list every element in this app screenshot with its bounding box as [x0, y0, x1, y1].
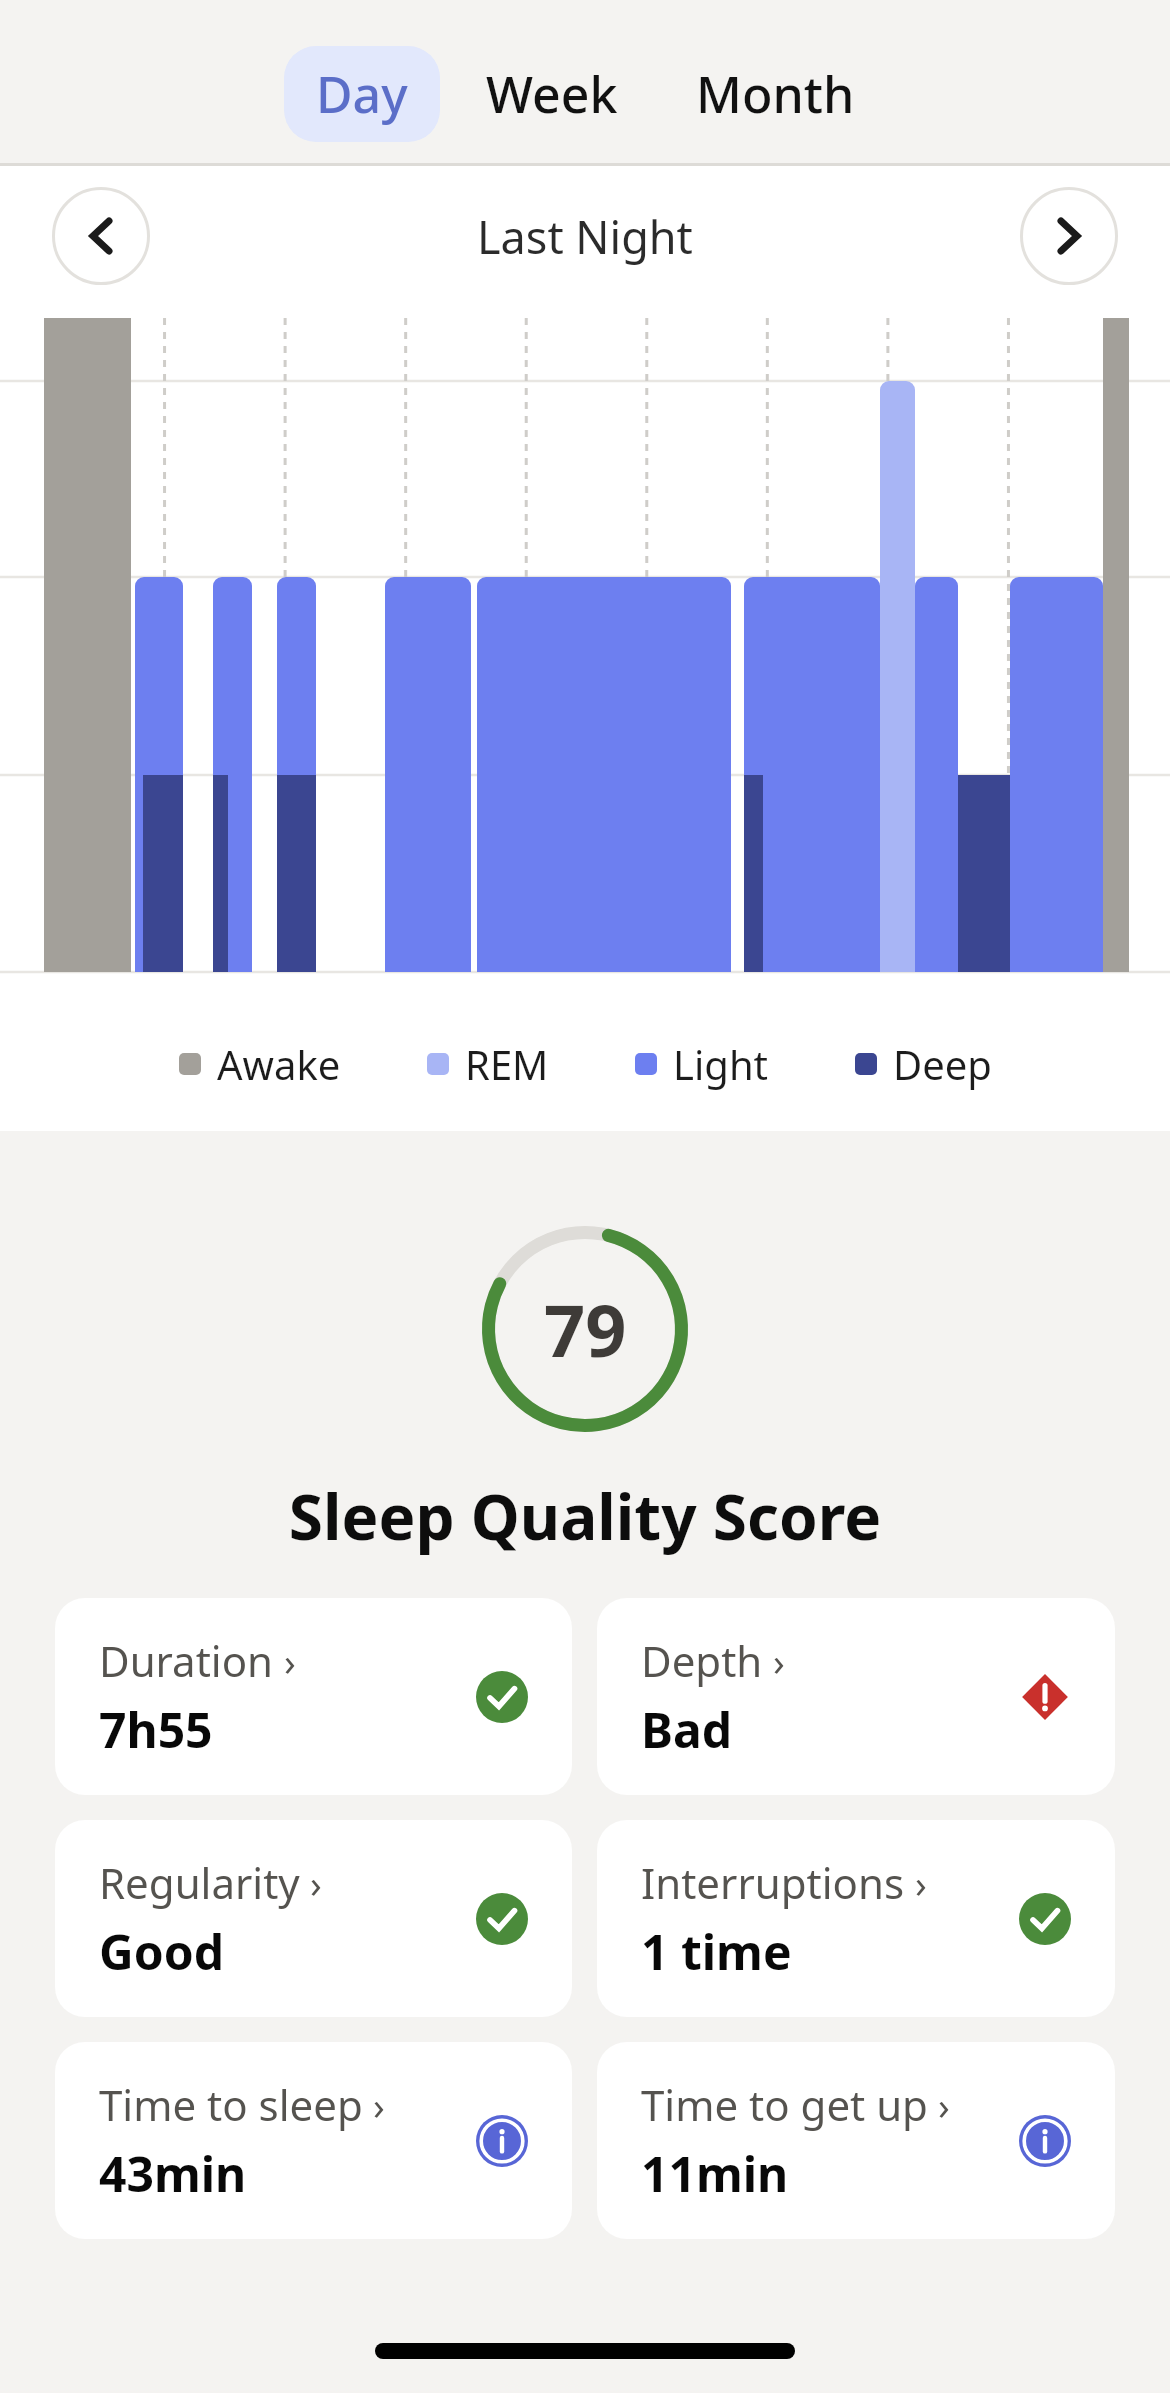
button[interactable]: Previous night — [52, 187, 150, 285]
staticText: Depth — [641, 1632, 763, 1689]
staticText: › — [284, 1635, 296, 1687]
button[interactable]: Duration — [55, 1598, 572, 1795]
staticText: Deep — [893, 1037, 992, 1091]
button[interactable]: Next night — [1020, 187, 1118, 285]
staticText: Interruptions — [641, 1854, 905, 1911]
staticText: Day — [316, 60, 408, 128]
staticText: Sleep Quality Score — [0, 1474, 1170, 1558]
staticText: Bad — [641, 1697, 733, 1762]
staticText: Light — [673, 1037, 769, 1091]
staticText: 7h55 — [99, 1697, 213, 1762]
button[interactable]: Month — [664, 46, 887, 142]
button[interactable]: Regularity — [55, 1820, 572, 2017]
staticText: › — [310, 1857, 322, 1909]
staticText: Awake — [217, 1037, 341, 1091]
staticText: REM — [465, 1037, 549, 1091]
staticText: 1 time — [641, 1919, 792, 1984]
staticText: Time to get up — [641, 2076, 928, 2133]
staticText: Week — [486, 60, 618, 128]
button[interactable]: Week — [454, 46, 650, 142]
staticText: Duration — [99, 1632, 274, 1689]
staticText: Regularity — [99, 1854, 300, 1911]
staticText: › — [373, 2079, 385, 2131]
staticText: › — [938, 2079, 950, 2131]
staticText: 11min — [641, 2141, 789, 2206]
button[interactable]: Depth — [597, 1598, 1115, 1795]
staticText: 43min — [99, 2141, 247, 2206]
button[interactable]: Time to sleep — [55, 2042, 572, 2239]
button[interactable]: Day — [284, 46, 440, 142]
staticText: Good — [99, 1919, 225, 1984]
button[interactable]: Time to get up — [597, 2042, 1115, 2239]
staticText: Month — [696, 60, 855, 128]
button[interactable]: Interruptions — [597, 1820, 1115, 2017]
staticText: Last Night — [477, 206, 693, 267]
staticText: Time to sleep — [99, 2076, 363, 2133]
staticText: › — [773, 1635, 785, 1687]
staticText: 79 — [544, 1280, 627, 1378]
staticText: › — [915, 1857, 927, 1909]
